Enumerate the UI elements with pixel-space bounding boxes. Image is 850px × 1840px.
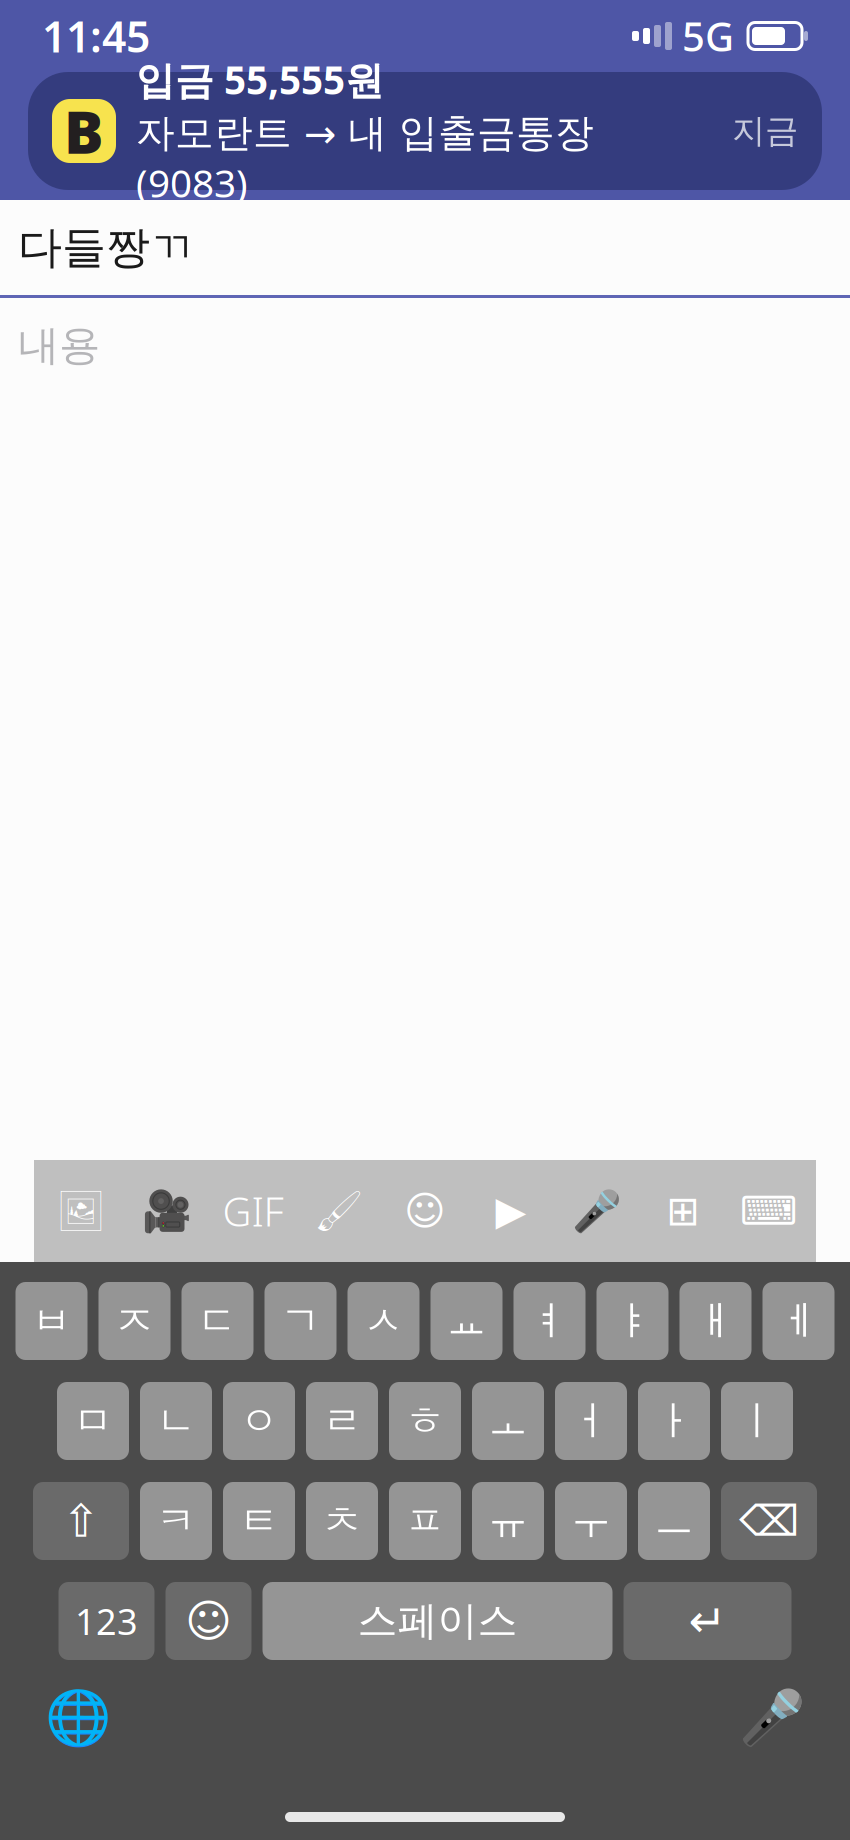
button[interactable]: Change keyboard language — [38, 1678, 118, 1758]
button[interactable]: ㅠ — [472, 1482, 544, 1560]
button[interactable]: B — [28, 72, 822, 190]
staticText: B — [64, 92, 104, 170]
button[interactable]: 🎤 — [554, 1176, 640, 1246]
staticText: 🌐 — [45, 1687, 111, 1748]
staticText: 다들짱ㄲ — [18, 220, 194, 274]
staticText: ㅑ — [612, 1296, 652, 1345]
button[interactable]: ㄹ — [306, 1382, 378, 1460]
staticText: ⌨ — [740, 1188, 798, 1234]
button[interactable]: ㅍ — [389, 1482, 461, 1560]
staticText: 스페이스 — [357, 1596, 517, 1645]
button[interactable]: ㅐ — [679, 1282, 751, 1360]
staticText: ▶ — [495, 1188, 526, 1234]
staticText: 🖌 — [313, 1188, 364, 1234]
staticText: ㅁ — [73, 1396, 113, 1445]
staticText: 5G — [682, 9, 734, 62]
staticText: 🎤 — [572, 1188, 622, 1234]
staticText: ㅣ — [737, 1396, 777, 1445]
staticText: ㅊ — [322, 1496, 362, 1545]
staticText: ㅛ — [446, 1296, 486, 1345]
button[interactable]: ⌨ — [726, 1176, 812, 1246]
button[interactable]: ㅊ — [306, 1482, 378, 1560]
button[interactable]: ㅋ — [140, 1482, 212, 1560]
button[interactable]: ⊞ — [640, 1176, 726, 1246]
button[interactable]: Dictation — [732, 1678, 812, 1758]
staticText: ㅡ — [654, 1496, 694, 1545]
staticText: 11:45 — [42, 8, 150, 64]
staticText: ㅏ — [654, 1396, 694, 1445]
staticText: ⊞ — [666, 1188, 700, 1234]
button[interactable]: ⇧ — [33, 1482, 129, 1560]
staticText: ⇧ — [62, 1495, 100, 1547]
staticText: ㅗ — [488, 1396, 528, 1445]
staticText: 🖼 — [55, 1188, 106, 1234]
staticText: ㅐ — [695, 1296, 735, 1345]
button[interactable]: ▶ — [468, 1176, 554, 1246]
staticText: ☺ — [185, 1595, 232, 1647]
staticText: ㅍ — [405, 1496, 445, 1545]
staticText: GIF — [222, 1184, 283, 1237]
staticText: ㄷ — [197, 1296, 237, 1345]
staticText: ↵ — [688, 1595, 726, 1647]
staticText: 🎥 — [142, 1188, 192, 1234]
staticText: ㅂ — [31, 1296, 71, 1345]
staticText: ☺ — [404, 1188, 446, 1234]
button[interactable]: 스페이스 — [262, 1582, 612, 1660]
button[interactable]: ㅁ — [57, 1382, 129, 1460]
button[interactable]: ㅏ — [638, 1382, 710, 1460]
button[interactable]: 🎥 — [124, 1176, 210, 1246]
staticText: ㅅ — [363, 1296, 403, 1345]
staticText: ㄴ — [156, 1396, 196, 1445]
staticText: ㅔ — [778, 1296, 818, 1345]
staticText: 내용 — [18, 320, 100, 371]
staticText: ㅜ — [571, 1496, 611, 1545]
button[interactable]: ☺ — [382, 1176, 468, 1246]
button[interactable]: ㅎ — [389, 1382, 461, 1460]
button[interactable]: ㅌ — [223, 1482, 295, 1560]
button[interactable]: ㄷ — [181, 1282, 253, 1360]
staticText: ㅠ — [488, 1496, 528, 1545]
staticText: ㅇ — [239, 1396, 279, 1445]
staticText: ㅈ — [114, 1296, 154, 1345]
button[interactable]: ㅣ — [721, 1382, 793, 1460]
staticText: ㅓ — [571, 1396, 611, 1445]
staticText: ⌫ — [739, 1497, 799, 1545]
staticText: 입금 55,555원 — [136, 54, 384, 105]
button[interactable]: ㅂ — [15, 1282, 87, 1360]
button[interactable]: ㄱ — [264, 1282, 336, 1360]
button[interactable]: 🖌 — [296, 1176, 382, 1246]
button[interactable]: 🖼 — [38, 1176, 124, 1246]
staticText: ㅎ — [405, 1396, 445, 1445]
button[interactable]: ㅡ — [638, 1482, 710, 1560]
staticText: ㅌ — [239, 1496, 279, 1545]
button[interactable]: ㅕ — [513, 1282, 585, 1360]
button[interactable]: ㅑ — [596, 1282, 668, 1360]
button[interactable]: ㅈ — [98, 1282, 170, 1360]
staticText: 지금 — [732, 110, 798, 151]
button[interactable]: ㄴ — [140, 1382, 212, 1460]
staticText: ㅋ — [156, 1496, 196, 1545]
staticText: 🎤 — [739, 1687, 805, 1748]
button[interactable]: ㅇ — [223, 1382, 295, 1460]
staticText: ㄹ — [322, 1396, 362, 1445]
staticText: ㄱ — [280, 1296, 320, 1345]
staticText: ㅕ — [529, 1296, 569, 1345]
staticText: 123 — [75, 1597, 138, 1645]
button[interactable]: ⌫ — [721, 1482, 817, 1560]
button[interactable]: ☺ — [165, 1582, 251, 1660]
button[interactable]: ㅛ — [430, 1282, 502, 1360]
staticText: 자모란트 → 내 입출금통장(9083) — [136, 109, 594, 208]
button[interactable]: ㅓ — [555, 1382, 627, 1460]
button[interactable]: GIF — [210, 1176, 296, 1246]
button[interactable]: ㅜ — [555, 1482, 627, 1560]
button[interactable]: 123 — [58, 1582, 154, 1660]
button[interactable]: ㅅ — [347, 1282, 419, 1360]
button[interactable]: ↵ — [623, 1582, 791, 1660]
button[interactable]: ㅔ — [762, 1282, 834, 1360]
button[interactable]: ㅗ — [472, 1382, 544, 1460]
